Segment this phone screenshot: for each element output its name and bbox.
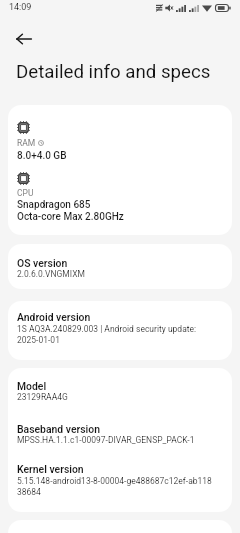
staticText: 23129RAA4G (17, 392, 68, 402)
staticText: MPSS.HA.1.1.c1-00097-DIVAR_GENSP_PACK-1 (17, 435, 195, 445)
button[interactable]: OS version (8, 244, 232, 289)
staticText: Kernel version (17, 463, 84, 475)
staticText: 1S AQ3A.240829.003 | Android security up… (17, 323, 223, 345)
staticText: Octa-core Max 2.80GHz (17, 211, 124, 223)
staticText: 8.0+4.0 GB (17, 150, 67, 162)
staticText: Model (17, 380, 47, 392)
staticText: Baseband version (17, 423, 100, 435)
staticText: OS version (17, 257, 68, 269)
button[interactable]: Android version (8, 301, 232, 360)
button[interactable]: Back (10, 25, 38, 53)
staticText: RAM (17, 138, 36, 148)
staticText: 5.15.148-android13-8-00004-ge488687c12ef… (17, 475, 223, 497)
button[interactable]: RAM (8, 105, 232, 235)
staticText: 2.0.6.0.VNGMIXM (17, 269, 85, 279)
staticText: CPU (17, 188, 34, 198)
staticText: Android version (17, 311, 91, 323)
staticText: Detailed info and specs (16, 61, 211, 83)
button[interactable]: Model (8, 368, 232, 512)
staticText: Snapdragon 685 (17, 199, 91, 211)
staticText: 14:09 (9, 2, 32, 13)
